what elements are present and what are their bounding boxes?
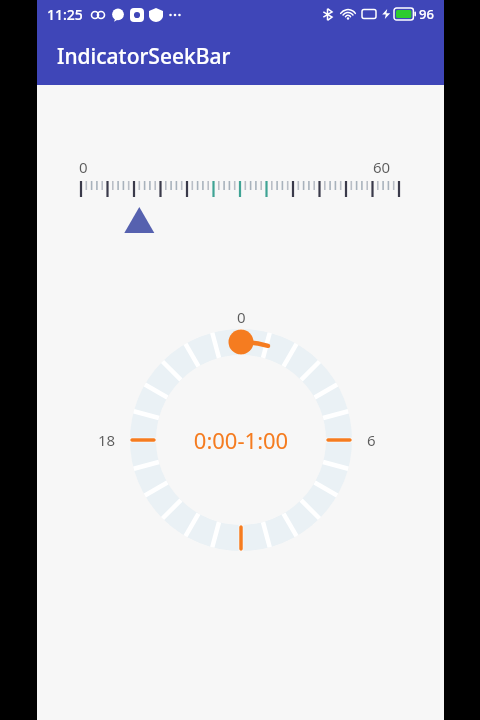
staticText: 96 <box>419 5 434 23</box>
staticText: 0:00-1:00 <box>116 425 366 455</box>
staticText: 0 <box>237 307 246 327</box>
staticText: 6 <box>367 430 376 450</box>
button[interactable]: Circular time range seek bar <box>116 315 366 565</box>
staticText: 11:25 <box>47 5 83 24</box>
staticText: 18 <box>98 430 116 450</box>
button[interactable]: 0 <box>37 145 444 235</box>
staticText: 60 <box>373 157 391 177</box>
staticText: 0 <box>79 157 88 177</box>
staticText: IndicatorSeekBar <box>57 42 231 71</box>
